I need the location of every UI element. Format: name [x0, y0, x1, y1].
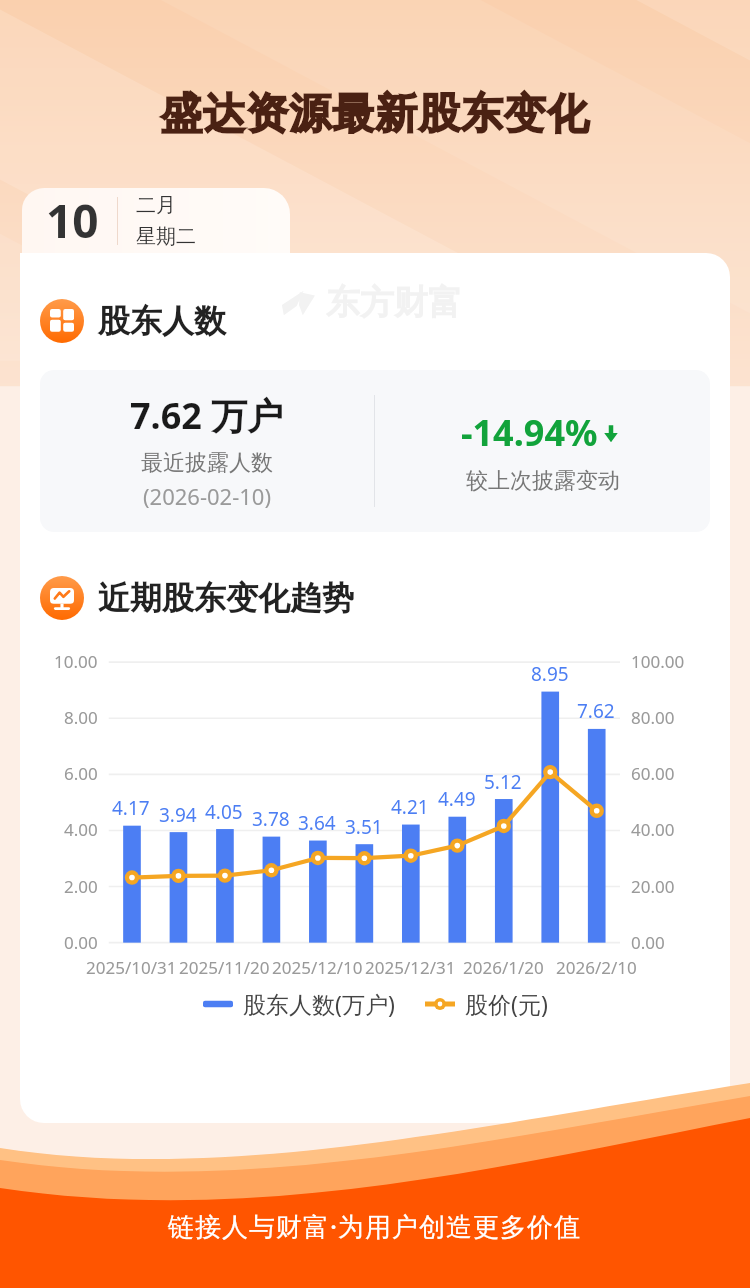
button[interactable]: 近期股东变化趋势 — [40, 576, 730, 620]
staticText: 3.94 — [159, 802, 197, 828]
other: 股东人数 — [40, 299, 84, 343]
staticText: 8.95 — [531, 661, 569, 687]
staticText: 10 — [46, 189, 99, 252]
staticText: 3.78 — [252, 806, 290, 832]
staticText: 星期二 — [136, 224, 196, 249]
staticText: 100.00 — [631, 650, 685, 673]
staticText: 股东人数(万户) — [243, 988, 395, 1019]
staticText: 最近披露人数 — [141, 449, 273, 477]
staticText: 股价(元) — [465, 988, 548, 1019]
staticText: 2026/2/10 — [556, 956, 637, 979]
staticText: 较上次披露变动 — [466, 467, 620, 495]
staticText: 6.00 — [64, 762, 98, 785]
staticText: 0.00 — [64, 931, 98, 954]
staticText: 80.00 — [631, 706, 675, 729]
staticText: 4.17 — [112, 795, 150, 821]
button[interactable]: 7.62 万户 — [40, 370, 710, 532]
staticText: 4.49 — [438, 786, 476, 812]
staticText: 2025/10/31 — [86, 956, 177, 979]
staticText: 8.00 — [64, 706, 98, 729]
staticText: 2025/12/31 — [365, 956, 456, 979]
staticText: 7.62 万户 — [130, 391, 284, 440]
staticText: 东方财富 — [326, 281, 462, 324]
staticText: 20.00 — [631, 875, 675, 898]
button[interactable]: 股东人数 — [40, 299, 730, 343]
staticText: 5.12 — [484, 769, 522, 795]
staticText: 链接人与财富·为用户创造更多价值 — [168, 1208, 582, 1244]
staticText: -14.94% — [461, 408, 598, 457]
staticText: 2025/12/10 — [272, 956, 363, 979]
staticText: 60.00 — [631, 762, 675, 785]
staticText: 2025/11/20 — [179, 956, 270, 979]
button[interactable]: 10 — [22, 188, 290, 253]
staticText: 近期股东变化趋势 — [98, 578, 354, 618]
staticText: 4.21 — [391, 794, 429, 820]
staticText: 2.00 — [64, 875, 98, 898]
staticText: (2026-02-10) — [143, 481, 272, 511]
staticText: 4.05 — [205, 799, 243, 825]
staticText: 0.00 — [631, 931, 665, 954]
staticText: 3.64 — [298, 810, 336, 836]
staticText: 7.62 — [577, 698, 615, 724]
staticText: 盛达资源最新股东变化 — [0, 88, 750, 141]
staticText: 股东人数 — [98, 301, 226, 341]
staticText: 二月 — [136, 193, 176, 218]
staticText: 3.51 — [345, 814, 383, 840]
other: 近期股东变化趋势 — [40, 576, 84, 620]
staticText: 40.00 — [631, 818, 675, 841]
staticText: 10.00 — [54, 650, 98, 673]
staticText: 4.00 — [64, 818, 98, 841]
staticText: 2026/1/20 — [463, 956, 544, 979]
